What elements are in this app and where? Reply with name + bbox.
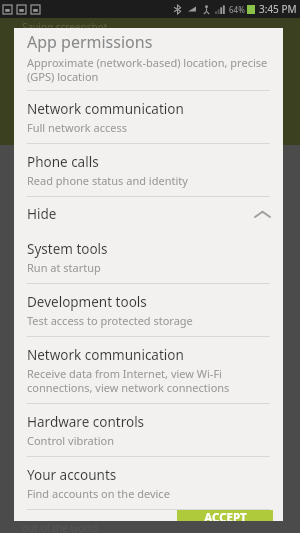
staticText: App permissions (27, 31, 153, 53)
staticText: Receive data from Internet, view Wi-Fi c… (27, 366, 230, 395)
button[interactable]: Development tools (14, 284, 283, 336)
staticText: Find accounts on the device (27, 486, 170, 501)
staticText: Approximate (network-based) location, pr… (27, 55, 268, 84)
staticText: Test access to protected storage (27, 313, 193, 328)
button[interactable]: Network communication (14, 337, 283, 403)
staticText: Run at startup (27, 260, 101, 275)
staticText: Development tools (27, 293, 147, 311)
button[interactable]: ACCEPT (177, 510, 273, 521)
button[interactable]: Hide permissions (14, 197, 283, 231)
staticText: Your accounts (27, 466, 117, 484)
button[interactable]: Phone calls (14, 144, 283, 196)
button[interactable]: Your accounts (14, 457, 283, 509)
staticText: Full network access (27, 120, 128, 135)
button[interactable]: System tools (14, 231, 283, 283)
button[interactable]: Hardware controls (14, 404, 283, 456)
button[interactable]: Approximate (network-based) location, pr… (14, 55, 283, 90)
staticText: Control vibration (27, 433, 114, 448)
staticText: 3:45 PM (259, 2, 297, 16)
staticText: Network communication (27, 100, 184, 118)
staticText: ACCEPT (204, 510, 247, 521)
staticText: Read phone status and identity (27, 173, 188, 188)
staticText: Saving screenshot... (22, 20, 116, 34)
staticText: Hide (27, 205, 57, 223)
staticText: Hardware controls (27, 413, 145, 431)
staticText: out of the world (22, 521, 98, 533)
staticText: Phone calls (27, 153, 99, 171)
staticText: 64% (229, 4, 245, 15)
staticText: System tools (27, 240, 108, 258)
button[interactable]: Network communication (14, 91, 283, 143)
staticText: Network communication (27, 346, 184, 364)
